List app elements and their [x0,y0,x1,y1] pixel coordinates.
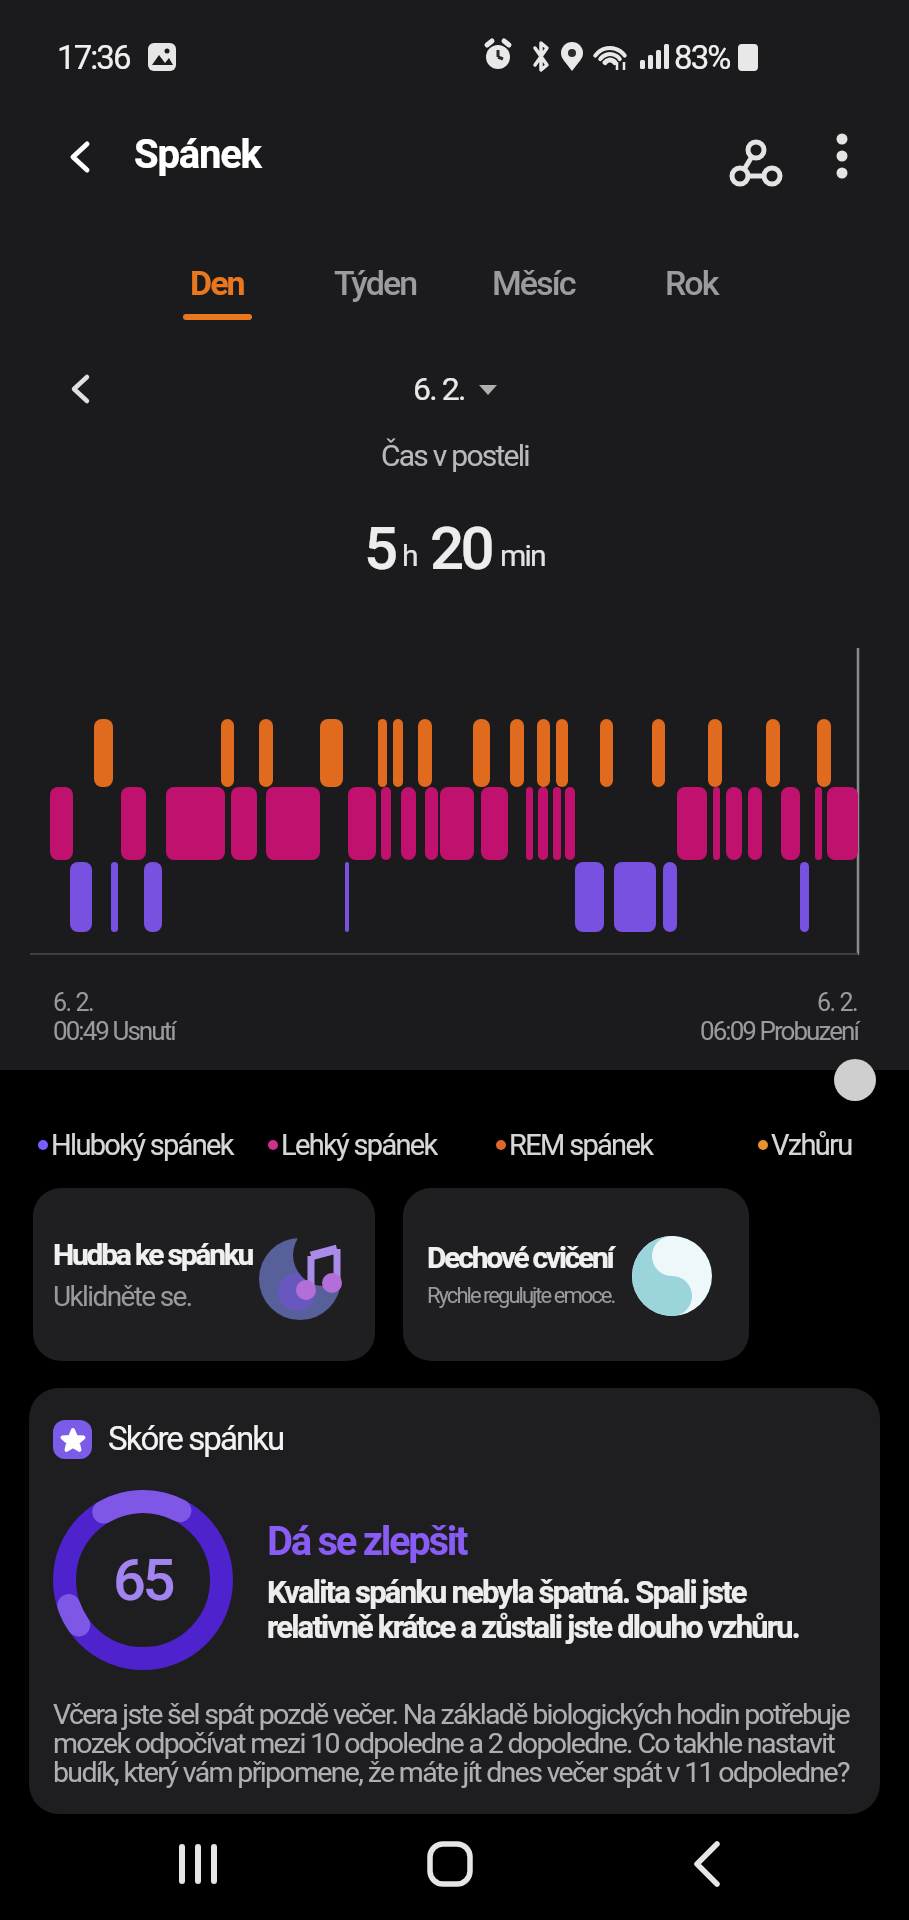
staticText: Dá se zlepšit [267,1518,467,1565]
staticText: 65 [113,1546,173,1614]
staticText: 83% [674,38,730,77]
button[interactable] [52,129,108,185]
button[interactable]: Dechové cvičení [403,1188,749,1361]
staticText: Čas v posteli [381,438,529,473]
staticText: 6. 2. [53,988,94,1017]
staticText: Kvalita spánku nebyla špatná. Spali jste… [267,1574,800,1645]
staticText: Spánek [134,131,261,178]
button[interactable] [720,128,778,186]
button[interactable] [814,128,870,184]
staticText: Uklidněte se. [53,1280,192,1313]
staticText: Hluboký spánek [51,1128,233,1162]
button[interactable] [54,362,108,416]
staticText: min [500,538,545,573]
staticText: 6. 2. [413,370,465,408]
button[interactable]: Den [138,258,296,308]
button[interactable]: Hudba ke spánku [33,1188,375,1361]
button[interactable] [668,1826,744,1902]
button[interactable]: Skóre spánku [29,1388,880,1814]
button[interactable] [834,1059,876,1101]
staticText: Lehký spánek [281,1128,437,1162]
button[interactable]: Rok [612,258,770,308]
staticText: 06:09 Probuzení [700,1016,858,1046]
staticText: h [402,538,417,573]
staticText: 00:49 Usnutí [53,1016,175,1046]
button[interactable]: 6. 2. [0,370,909,408]
staticText: 20 [430,513,492,583]
button[interactable] [412,1826,488,1902]
staticText: Dechové cvičení [427,1240,613,1275]
staticText: REM spánek [509,1128,653,1162]
staticText: Týden [334,263,417,303]
staticText: Rychle regulujte emoce. [427,1283,615,1309]
staticText: Skóre spánku [108,1419,284,1458]
staticText: Měsíc [492,263,575,303]
button[interactable]: Týden [296,258,454,308]
staticText: Den [190,263,244,303]
button[interactable] [160,1826,236,1902]
button[interactable]: Měsíc [454,258,612,308]
staticText: Hudba ke spánku [53,1237,253,1272]
staticText: 6. 2. [817,988,858,1017]
staticText: 5 [364,513,395,583]
staticText: Včera jste šel spát pozdě večer. Na zákl… [53,1698,850,1789]
staticText: Rok [665,263,718,303]
staticText: 17:36 [57,38,130,77]
staticText: Vzhůru [771,1128,852,1162]
